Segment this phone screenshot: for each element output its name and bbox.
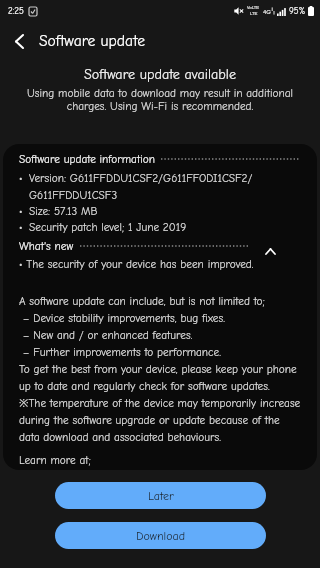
staticText: What's new bbox=[19, 240, 74, 253]
staticText: 2:25 bbox=[8, 6, 24, 16]
staticText: A software update can include, but is no… bbox=[19, 295, 301, 444]
button[interactable]: Later bbox=[55, 482, 266, 509]
staticText: Software update bbox=[39, 32, 145, 50]
staticText: • The security of your device has been i… bbox=[19, 258, 254, 271]
button[interactable]: Collapse what's new bbox=[260, 244, 280, 258]
staticText: 4G bbox=[263, 8, 271, 15]
staticText: 95% bbox=[289, 6, 306, 16]
staticText: Using mobile data to download may result… bbox=[8, 87, 312, 113]
staticText: LTE bbox=[250, 11, 258, 17]
staticText: Version: G611FFDDU1CSF2/G611FFODI1CSF2/ … bbox=[29, 172, 253, 233]
staticText: Software update information bbox=[19, 153, 155, 166]
button[interactable]: Download bbox=[55, 522, 266, 549]
staticText: • • • bbox=[19, 172, 29, 233]
staticText: Later bbox=[148, 489, 174, 503]
staticText: Software update available bbox=[0, 66, 320, 82]
staticText: Download bbox=[136, 529, 186, 543]
button[interactable]: Back bbox=[6, 28, 32, 54]
staticText: VoLTE bbox=[247, 5, 260, 11]
staticText: Learn more at; bbox=[19, 454, 91, 467]
